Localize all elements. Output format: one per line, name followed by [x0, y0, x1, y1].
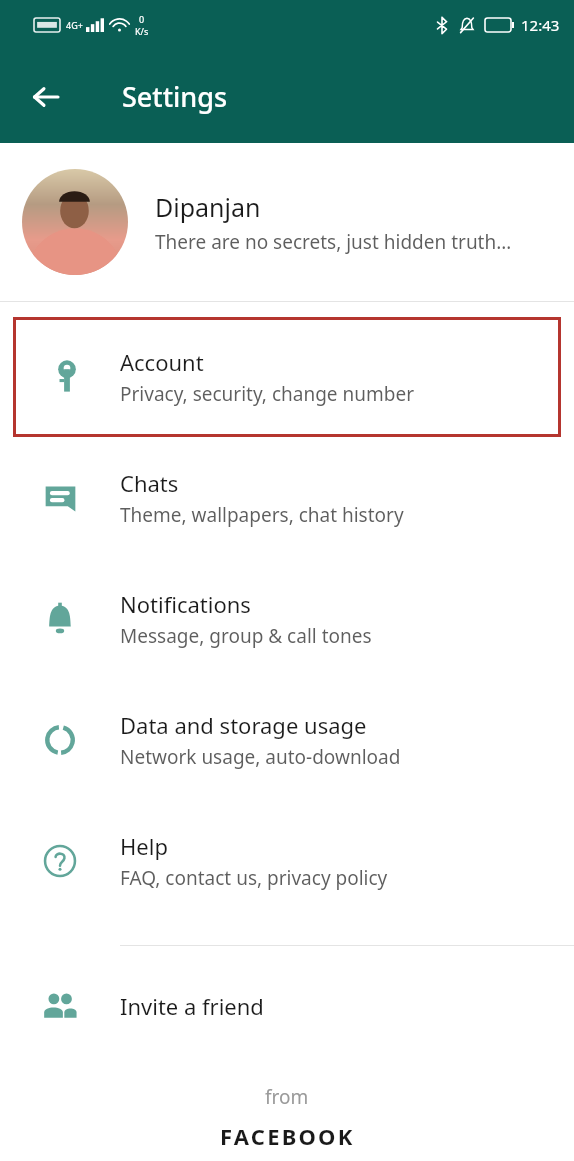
button[interactable]: Dipanjan — [0, 143, 574, 301]
staticText: K/s — [135, 25, 149, 37]
button[interactable]: Chats — [0, 437, 574, 558]
staticText: Network usage, auto-download — [120, 744, 401, 770]
staticText: Account — [120, 347, 204, 377]
button[interactable]: Help — [0, 800, 574, 921]
staticText: There are no secrets, just hidden truth… — [155, 229, 512, 255]
button[interactable]: Invite a friend — [0, 946, 574, 1066]
staticText: 0 — [139, 13, 145, 25]
staticText: FAQ, contact us, privacy policy — [120, 865, 388, 891]
button[interactable]: Back — [18, 69, 74, 125]
button[interactable]: Notifications — [0, 558, 574, 679]
staticText: Invite a friend — [120, 991, 264, 1021]
staticText: Privacy, security, change number — [120, 381, 414, 407]
staticText: Data and storage usage — [120, 710, 367, 740]
staticText: FACEBOOK — [220, 1121, 355, 1151]
staticText: Notifications — [120, 589, 251, 619]
staticText: 4G+ — [66, 19, 83, 31]
staticText: 12:43 — [521, 15, 560, 35]
staticText: Dipanjan — [155, 190, 261, 224]
staticText: from — [265, 1084, 309, 1110]
button[interactable]: Data and storage usage — [0, 679, 574, 800]
staticText: Theme, wallpapers, chat history — [120, 502, 404, 528]
staticText: Message, group & call tones — [120, 623, 372, 649]
button[interactable]: Account — [13, 317, 561, 437]
staticText: Help — [120, 831, 168, 861]
staticText: Settings — [122, 78, 228, 115]
staticText: Chats — [120, 468, 179, 498]
